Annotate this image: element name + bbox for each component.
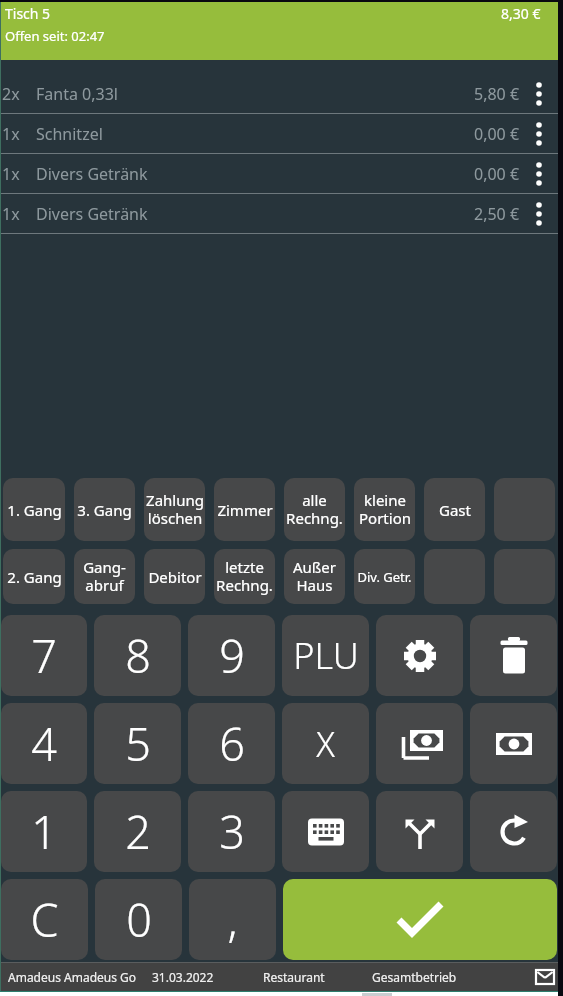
- button[interactable]: Zimmer: [214, 478, 275, 541]
- staticText: Divers Getränk: [36, 163, 148, 185]
- button[interactable]: Zahlung löschen: [144, 478, 205, 541]
- button[interactable]: PLU: [282, 615, 369, 696]
- staticText: 0,00 €: [474, 123, 520, 145]
- button[interactable]: [376, 703, 463, 784]
- staticText: Restaurant: [263, 969, 325, 985]
- button[interactable]: [494, 549, 555, 604]
- button[interactable]: 2: [94, 791, 181, 872]
- button[interactable]: 2x: [0, 74, 558, 114]
- button[interactable]: [470, 703, 557, 784]
- button[interactable]: [532, 965, 558, 989]
- button[interactable]: [282, 791, 369, 872]
- staticText: Debitor: [148, 567, 202, 587]
- button[interactable]: [520, 74, 558, 113]
- staticText: 3: [219, 801, 245, 862]
- button[interactable]: 1x: [0, 114, 558, 154]
- staticText: 5,80 €: [474, 83, 520, 105]
- button[interactable]: 0: [95, 879, 182, 960]
- button[interactable]: Div. Getr.: [354, 549, 415, 604]
- staticText: Außer Haus: [293, 557, 336, 596]
- button[interactable]: 1x: [0, 154, 558, 194]
- button[interactable]: 3. Gang: [74, 478, 135, 541]
- staticText: Gang- abruf: [83, 557, 126, 596]
- staticText: PLU: [293, 631, 359, 680]
- button[interactable]: X: [282, 703, 369, 784]
- button[interactable]: [424, 549, 485, 604]
- staticText: Schnitzel: [36, 123, 103, 145]
- button[interactable]: 6: [188, 703, 275, 784]
- staticText: Gesamtbetrieb: [372, 969, 457, 985]
- staticText: Fanta 0,33l: [36, 83, 118, 105]
- staticText: 1. Gang: [7, 500, 62, 520]
- staticText: 2: [125, 801, 151, 862]
- button[interactable]: [494, 478, 555, 541]
- staticText: 8: [125, 625, 151, 686]
- button[interactable]: Gast: [424, 478, 485, 541]
- button[interactable]: 3: [188, 791, 275, 872]
- staticText: Gast: [439, 500, 471, 520]
- staticText: Zimmer: [217, 500, 273, 520]
- staticText: 7: [31, 625, 57, 686]
- staticText: 1x: [2, 123, 20, 145]
- staticText: Div. Getr.: [357, 568, 412, 586]
- staticText: Divers Getränk: [36, 203, 148, 225]
- staticText: 2. Gang: [7, 567, 62, 587]
- staticText: Tisch 5: [5, 4, 51, 23]
- staticText: 5: [125, 713, 151, 774]
- button[interactable]: [520, 194, 558, 233]
- button[interactable]: [470, 615, 557, 696]
- button[interactable]: Gang- abruf: [74, 549, 135, 604]
- staticText: 1x: [2, 163, 20, 185]
- staticText: 6: [219, 713, 245, 774]
- button[interactable]: [520, 114, 558, 153]
- staticText: 0,00 €: [474, 163, 520, 185]
- button[interactable]: 1x: [0, 194, 558, 234]
- button[interactable]: [520, 154, 558, 193]
- staticText: 1x: [2, 203, 20, 225]
- button[interactable]: kleine Portion: [354, 478, 415, 541]
- staticText: ,: [227, 889, 238, 950]
- staticText: letzte Rechng.: [216, 557, 273, 596]
- staticText: Amadeus Amadeus Go: [8, 969, 137, 985]
- staticText: 8,30 €: [501, 4, 541, 23]
- staticText: X: [316, 721, 335, 767]
- button[interactable]: letzte Rechng.: [214, 549, 275, 604]
- button[interactable]: 5: [94, 703, 181, 784]
- button[interactable]: 1: [1, 791, 87, 872]
- staticText: Zahlung löschen: [146, 490, 204, 529]
- staticText: 9: [219, 625, 245, 686]
- button[interactable]: [283, 879, 557, 960]
- staticText: C: [30, 889, 59, 950]
- button[interactable]: [470, 791, 557, 872]
- button[interactable]: 4: [1, 703, 87, 784]
- button[interactable]: 9: [188, 615, 275, 696]
- button[interactable]: [376, 791, 463, 872]
- button[interactable]: Debitor: [144, 549, 205, 604]
- button[interactable]: 7: [1, 615, 87, 696]
- staticText: 3. Gang: [77, 500, 132, 520]
- staticText: 0: [126, 889, 152, 950]
- button[interactable]: Außer Haus: [284, 549, 345, 604]
- button[interactable]: 1. Gang: [3, 478, 65, 541]
- staticText: 1: [31, 801, 57, 862]
- staticText: 2,50 €: [474, 203, 520, 225]
- staticText: alle Rechng.: [286, 490, 343, 529]
- staticText: 4: [31, 713, 57, 774]
- staticText: Offen seit: 02:47: [5, 27, 105, 45]
- button[interactable]: [376, 615, 463, 696]
- staticText: 2x: [2, 83, 20, 105]
- button[interactable]: ,: [189, 879, 276, 960]
- button[interactable]: 8: [94, 615, 181, 696]
- button[interactable]: C: [1, 879, 88, 960]
- button[interactable]: 2. Gang: [3, 549, 65, 604]
- staticText: 31.03.2022: [152, 969, 214, 985]
- staticText: kleine Portion: [359, 490, 411, 529]
- button[interactable]: alle Rechng.: [284, 478, 345, 541]
